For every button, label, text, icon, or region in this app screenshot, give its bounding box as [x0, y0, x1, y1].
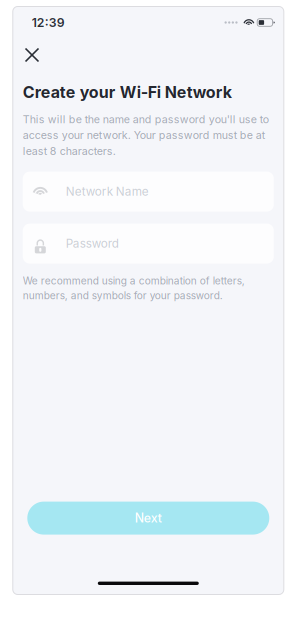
- staticText: Next: [135, 511, 162, 526]
- staticText: This will be the name and password you'l…: [23, 113, 269, 158]
- button[interactable]: Network Name: [23, 172, 274, 212]
- staticText: We recommend using a combination of lett…: [23, 275, 245, 302]
- button[interactable]: Close: [20, 43, 43, 66]
- staticText: Password: [66, 236, 119, 251]
- button[interactable]: Next: [27, 502, 269, 535]
- staticText: Create your Wi-Fi Network: [23, 82, 232, 102]
- staticText: 12:39: [32, 15, 65, 30]
- button[interactable]: Password: [23, 224, 274, 264]
- staticText: Network Name: [66, 184, 149, 199]
